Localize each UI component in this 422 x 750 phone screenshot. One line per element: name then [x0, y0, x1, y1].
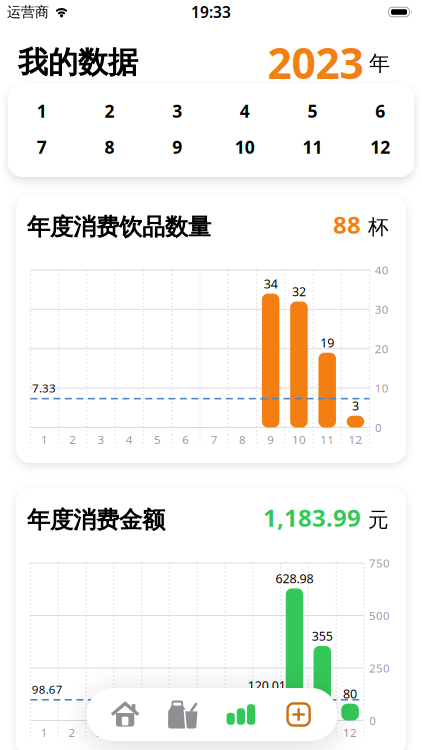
staticText: 8	[104, 135, 114, 159]
staticText: 1	[41, 725, 48, 740]
staticText: 9	[267, 432, 274, 447]
staticText: 4	[240, 99, 250, 123]
staticText: 6	[180, 725, 187, 740]
button[interactable]: Drinks	[154, 700, 212, 728]
staticText: 年度消费金额	[27, 505, 165, 534]
staticText: 32	[292, 283, 306, 300]
staticText: 2	[104, 99, 114, 123]
staticText: 11	[302, 135, 322, 159]
staticText: 10	[287, 725, 301, 740]
staticText: 12	[370, 135, 390, 159]
staticText: 4	[124, 725, 131, 740]
staticText: 3	[172, 99, 182, 123]
button[interactable]: 10	[211, 135, 279, 159]
staticText: 2023	[267, 34, 363, 91]
button[interactable]: 8	[76, 135, 143, 159]
button[interactable]: 2	[76, 99, 143, 123]
staticText: 500	[369, 608, 390, 623]
staticText: 750	[369, 555, 390, 571]
staticText: 12	[343, 725, 357, 740]
button[interactable]: 6	[346, 99, 414, 123]
staticText: 4	[126, 432, 133, 447]
staticText: 6	[182, 432, 189, 447]
button[interactable]: Statistics	[212, 704, 270, 725]
staticText: 628.98	[275, 570, 313, 587]
staticText: 3	[352, 397, 359, 414]
staticText: 运营商	[7, 3, 49, 21]
staticText: 80	[343, 685, 357, 702]
staticText: 3	[96, 725, 103, 740]
button[interactable]: 1	[8, 99, 76, 123]
button[interactable]: 11	[279, 135, 346, 159]
staticText: 20	[375, 341, 389, 357]
staticText: 0	[369, 713, 376, 728]
staticText: 2	[69, 725, 76, 740]
button[interactable]: 9	[143, 135, 211, 159]
staticText: 10	[375, 380, 389, 396]
staticText: 19:33	[191, 1, 231, 22]
staticText: 250	[369, 660, 390, 676]
staticText: 34	[264, 275, 278, 292]
staticText: 88	[333, 208, 361, 241]
button[interactable]: 4	[211, 99, 279, 123]
button[interactable]: 7	[8, 135, 76, 159]
staticText: 年度消费饮品数量	[27, 212, 211, 241]
button[interactable]: Add	[270, 702, 328, 727]
staticText: 1,183.99	[263, 501, 361, 534]
staticText: 11	[320, 432, 334, 447]
staticText: 3	[98, 432, 105, 447]
staticText: 元	[368, 507, 389, 533]
staticText: 7	[211, 432, 218, 447]
button[interactable]: 2023	[267, 24, 390, 90]
staticText: 8	[239, 432, 246, 447]
staticText: 7.33	[32, 380, 56, 396]
staticText: 2	[69, 432, 76, 447]
staticText: 1	[37, 99, 47, 123]
staticText: 10	[235, 135, 255, 159]
staticText: 杯	[368, 214, 389, 240]
staticText: 98.67	[32, 681, 63, 697]
staticText: 12	[348, 432, 362, 447]
staticText: 11	[315, 725, 329, 740]
button[interactable]: 3	[143, 99, 211, 123]
staticText: 6	[375, 99, 385, 123]
staticText: 30	[375, 301, 389, 317]
staticText: 355	[312, 627, 333, 644]
staticText: 10	[292, 432, 306, 447]
staticText: 7	[37, 135, 47, 159]
staticText: 0	[375, 420, 382, 435]
staticText: 5	[307, 99, 317, 123]
staticText: 5	[154, 432, 161, 447]
button[interactable]: 12	[346, 135, 414, 159]
staticText: 年	[369, 50, 390, 77]
button[interactable]: 5	[279, 99, 346, 123]
button[interactable]: Home	[96, 702, 154, 727]
staticText: 19	[320, 334, 334, 351]
staticText: 9	[172, 135, 182, 159]
staticText: 40	[375, 262, 389, 278]
staticText: 1	[41, 432, 48, 447]
staticText: 我的数据	[18, 44, 138, 81]
staticText: 120.01	[248, 677, 286, 694]
